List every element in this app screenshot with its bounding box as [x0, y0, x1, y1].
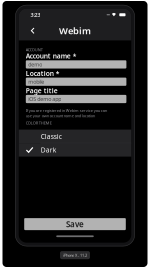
button[interactable]: Back: [26, 21, 40, 40]
staticText: Webim: [59, 24, 91, 37]
staticText: Account name *: [26, 52, 77, 60]
staticText: mobile: [28, 78, 44, 85]
staticText: demo: [28, 61, 42, 68]
staticText: Location *: [26, 69, 60, 78]
staticText: ACCOUNT: [26, 47, 43, 52]
staticText: Page title: [26, 86, 58, 95]
staticText: COLOR THEME: [26, 120, 52, 125]
staticText: Save: [66, 219, 84, 229]
staticText: 3:23: [30, 11, 40, 18]
staticText: Dark: [41, 145, 57, 154]
staticText: iOS demo app: [28, 95, 61, 103]
staticText: iPhone X - 11.2: [63, 252, 87, 258]
button[interactable]: Save: [24, 218, 126, 230]
button[interactable]: Dark: [19, 143, 131, 157]
staticText: Classic: [41, 132, 62, 141]
button[interactable]: Classic: [19, 130, 131, 143]
staticText: If you are registered in Webim service y…: [26, 108, 107, 118]
